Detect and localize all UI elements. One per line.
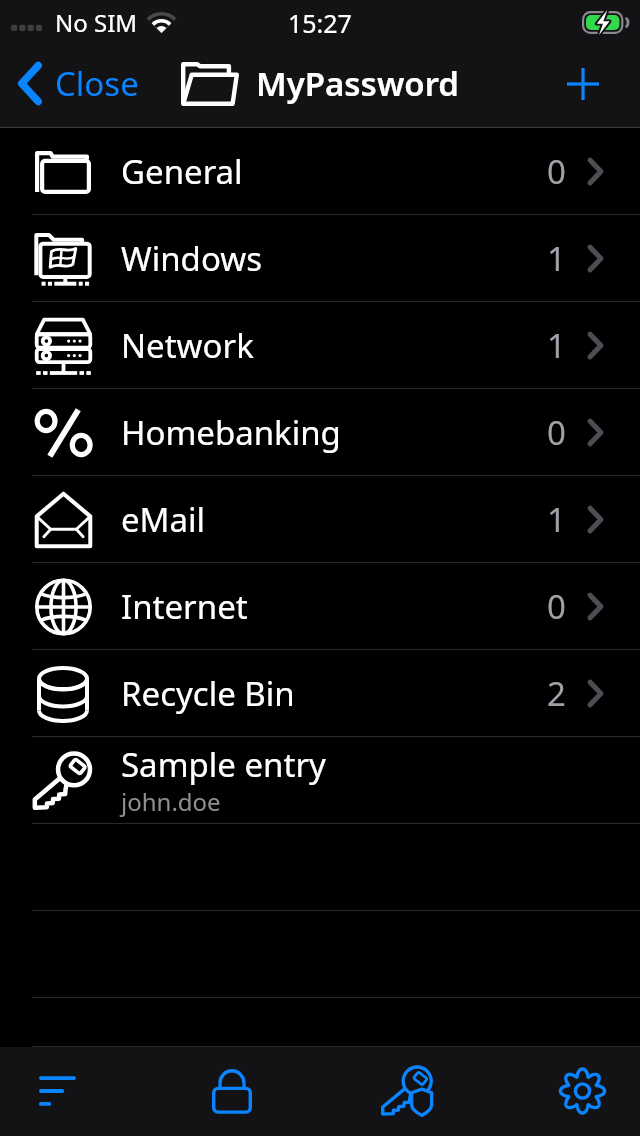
staticText: Windows bbox=[121, 236, 262, 281]
staticText: Close bbox=[55, 61, 139, 106]
staticText: Network bbox=[121, 323, 254, 368]
button[interactable]: Passwords bbox=[352, 1047, 462, 1135]
staticText: Recycle Bin bbox=[121, 671, 295, 716]
button[interactable]: Internet bbox=[0, 563, 640, 650]
staticText: 1 bbox=[547, 323, 566, 368]
staticText: General bbox=[121, 149, 243, 194]
staticText: Internet bbox=[121, 584, 248, 629]
staticText: Homebanking bbox=[121, 410, 341, 455]
button[interactable]: Close bbox=[0, 51, 153, 116]
button[interactable]: Lock bbox=[177, 1047, 287, 1135]
staticText: No SIM bbox=[55, 6, 138, 39]
button[interactable]: Sort bbox=[2, 1047, 112, 1135]
staticText: 0 bbox=[547, 410, 566, 455]
staticText: Sample entry bbox=[121, 742, 326, 787]
staticText: 1 bbox=[547, 236, 566, 281]
button[interactable]: Homebanking bbox=[0, 389, 640, 476]
button[interactable]: Network bbox=[0, 302, 640, 389]
button[interactable]: Sample entry bbox=[0, 737, 640, 824]
button[interactable]: Add bbox=[543, 55, 640, 119]
staticText: eMail bbox=[121, 497, 206, 542]
staticText: john.doe bbox=[121, 785, 221, 818]
staticText: 15:27 bbox=[288, 6, 352, 40]
staticText: MyPassword bbox=[256, 61, 459, 106]
button[interactable]: eMail bbox=[0, 476, 640, 563]
staticText: 0 bbox=[547, 149, 566, 194]
button[interactable]: Windows bbox=[0, 215, 640, 302]
staticText: 2 bbox=[547, 671, 566, 716]
staticText: 0 bbox=[547, 584, 566, 629]
staticText: 1 bbox=[547, 497, 566, 542]
button[interactable]: Recycle Bin bbox=[0, 650, 640, 737]
button[interactable]: Settings bbox=[527, 1047, 637, 1135]
button[interactable]: General bbox=[0, 128, 640, 215]
